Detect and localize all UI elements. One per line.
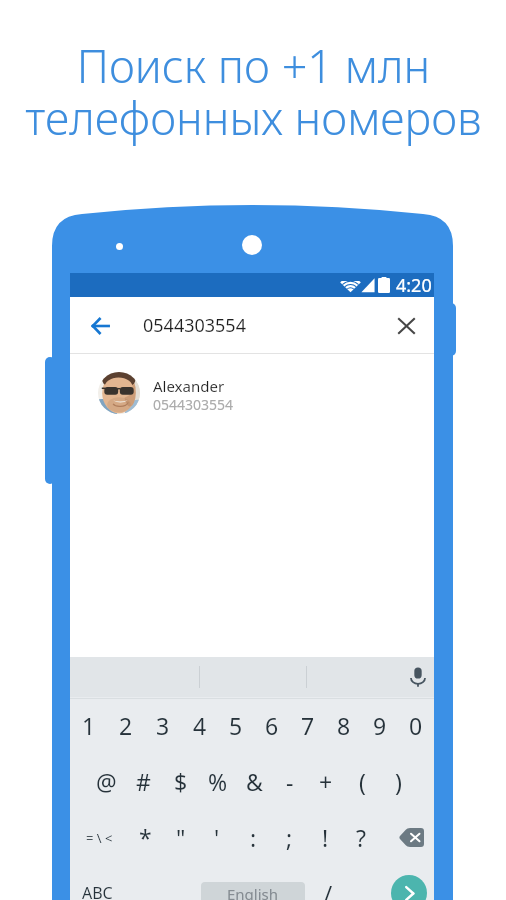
staticText: + — [319, 766, 333, 797]
button[interactable]: 8 — [326, 698, 362, 753]
staticText: 0544303554 — [153, 395, 234, 414]
staticText: 7 — [301, 710, 315, 741]
staticText: 2 — [119, 710, 133, 741]
staticText: 6 — [265, 710, 279, 741]
button[interactable]: - — [272, 753, 308, 810]
button[interactable]: Enter — [391, 875, 427, 900]
staticText: 5 — [229, 710, 243, 741]
staticText: 4:20 — [396, 273, 432, 297]
button[interactable]: & — [236, 753, 272, 810]
button[interactable]: 6 — [254, 698, 290, 753]
staticText: 3 — [156, 710, 170, 741]
button[interactable]: / — [310, 865, 346, 900]
staticText: ( — [359, 766, 366, 797]
button[interactable]: Clear — [380, 297, 432, 354]
staticText: 4 — [193, 710, 207, 741]
button[interactable]: 4 — [181, 698, 218, 753]
button[interactable]: + — [308, 753, 344, 810]
staticText: ; — [286, 822, 293, 853]
staticText: ' — [214, 822, 220, 853]
button[interactable]: ( — [344, 753, 380, 810]
button[interactable]: * — [128, 810, 163, 865]
button[interactable]: ? — [343, 810, 379, 865]
button[interactable]: 9 — [362, 698, 398, 753]
button[interactable]: Voice input — [396, 657, 439, 697]
button[interactable]: % — [199, 753, 236, 810]
staticText: " — [176, 822, 186, 853]
button[interactable]: ABC — [70, 865, 124, 900]
button[interactable]: ; — [271, 810, 307, 865]
button[interactable]: ! — [307, 810, 343, 865]
button[interactable]: ' — [199, 810, 235, 865]
button[interactable]: = \ < — [70, 810, 128, 865]
staticText: ) — [395, 766, 402, 797]
button[interactable]: 1 — [70, 698, 107, 753]
button[interactable]: ) — [380, 753, 416, 810]
staticText: - — [286, 766, 294, 797]
staticText: = \ < — [86, 829, 113, 847]
staticText: @ — [96, 766, 117, 797]
staticText: ? — [356, 822, 366, 853]
button[interactable]: 0 — [398, 698, 434, 753]
button[interactable]: 3 — [144, 698, 181, 753]
staticText: English — [227, 884, 279, 900]
button[interactable]: Backspace — [379, 810, 434, 865]
button[interactable]: $ — [162, 753, 199, 810]
staticText: 0544303554 — [143, 313, 246, 338]
button[interactable]: 7 — [290, 698, 326, 753]
staticText: 0 — [409, 710, 423, 741]
staticText: 1 — [82, 710, 96, 741]
staticText: % — [208, 766, 228, 797]
staticText: Alexander — [153, 376, 225, 396]
button[interactable]: @ — [88, 753, 125, 810]
staticText: 9 — [373, 710, 387, 741]
button[interactable]: Back — [74, 297, 126, 354]
staticText: 8 — [337, 710, 351, 741]
button[interactable]: 5 — [218, 698, 254, 753]
staticText: Поиск по +1 млн телефонных номеров — [25, 35, 482, 148]
button[interactable]: : — [235, 810, 271, 865]
button[interactable]: # — [125, 753, 162, 810]
button[interactable]: English — [201, 882, 305, 900]
staticText: & — [246, 766, 263, 797]
staticText: ABC — [82, 882, 113, 900]
staticText: * — [139, 822, 152, 853]
staticText: : — [250, 822, 257, 853]
staticText: # — [136, 766, 151, 797]
staticText: ! — [322, 822, 329, 853]
button[interactable]: 2 — [107, 698, 144, 753]
button[interactable]: " — [163, 810, 199, 865]
staticText: / — [324, 878, 333, 900]
button[interactable]: Alexander — [70, 354, 434, 426]
staticText: $ — [174, 766, 188, 797]
